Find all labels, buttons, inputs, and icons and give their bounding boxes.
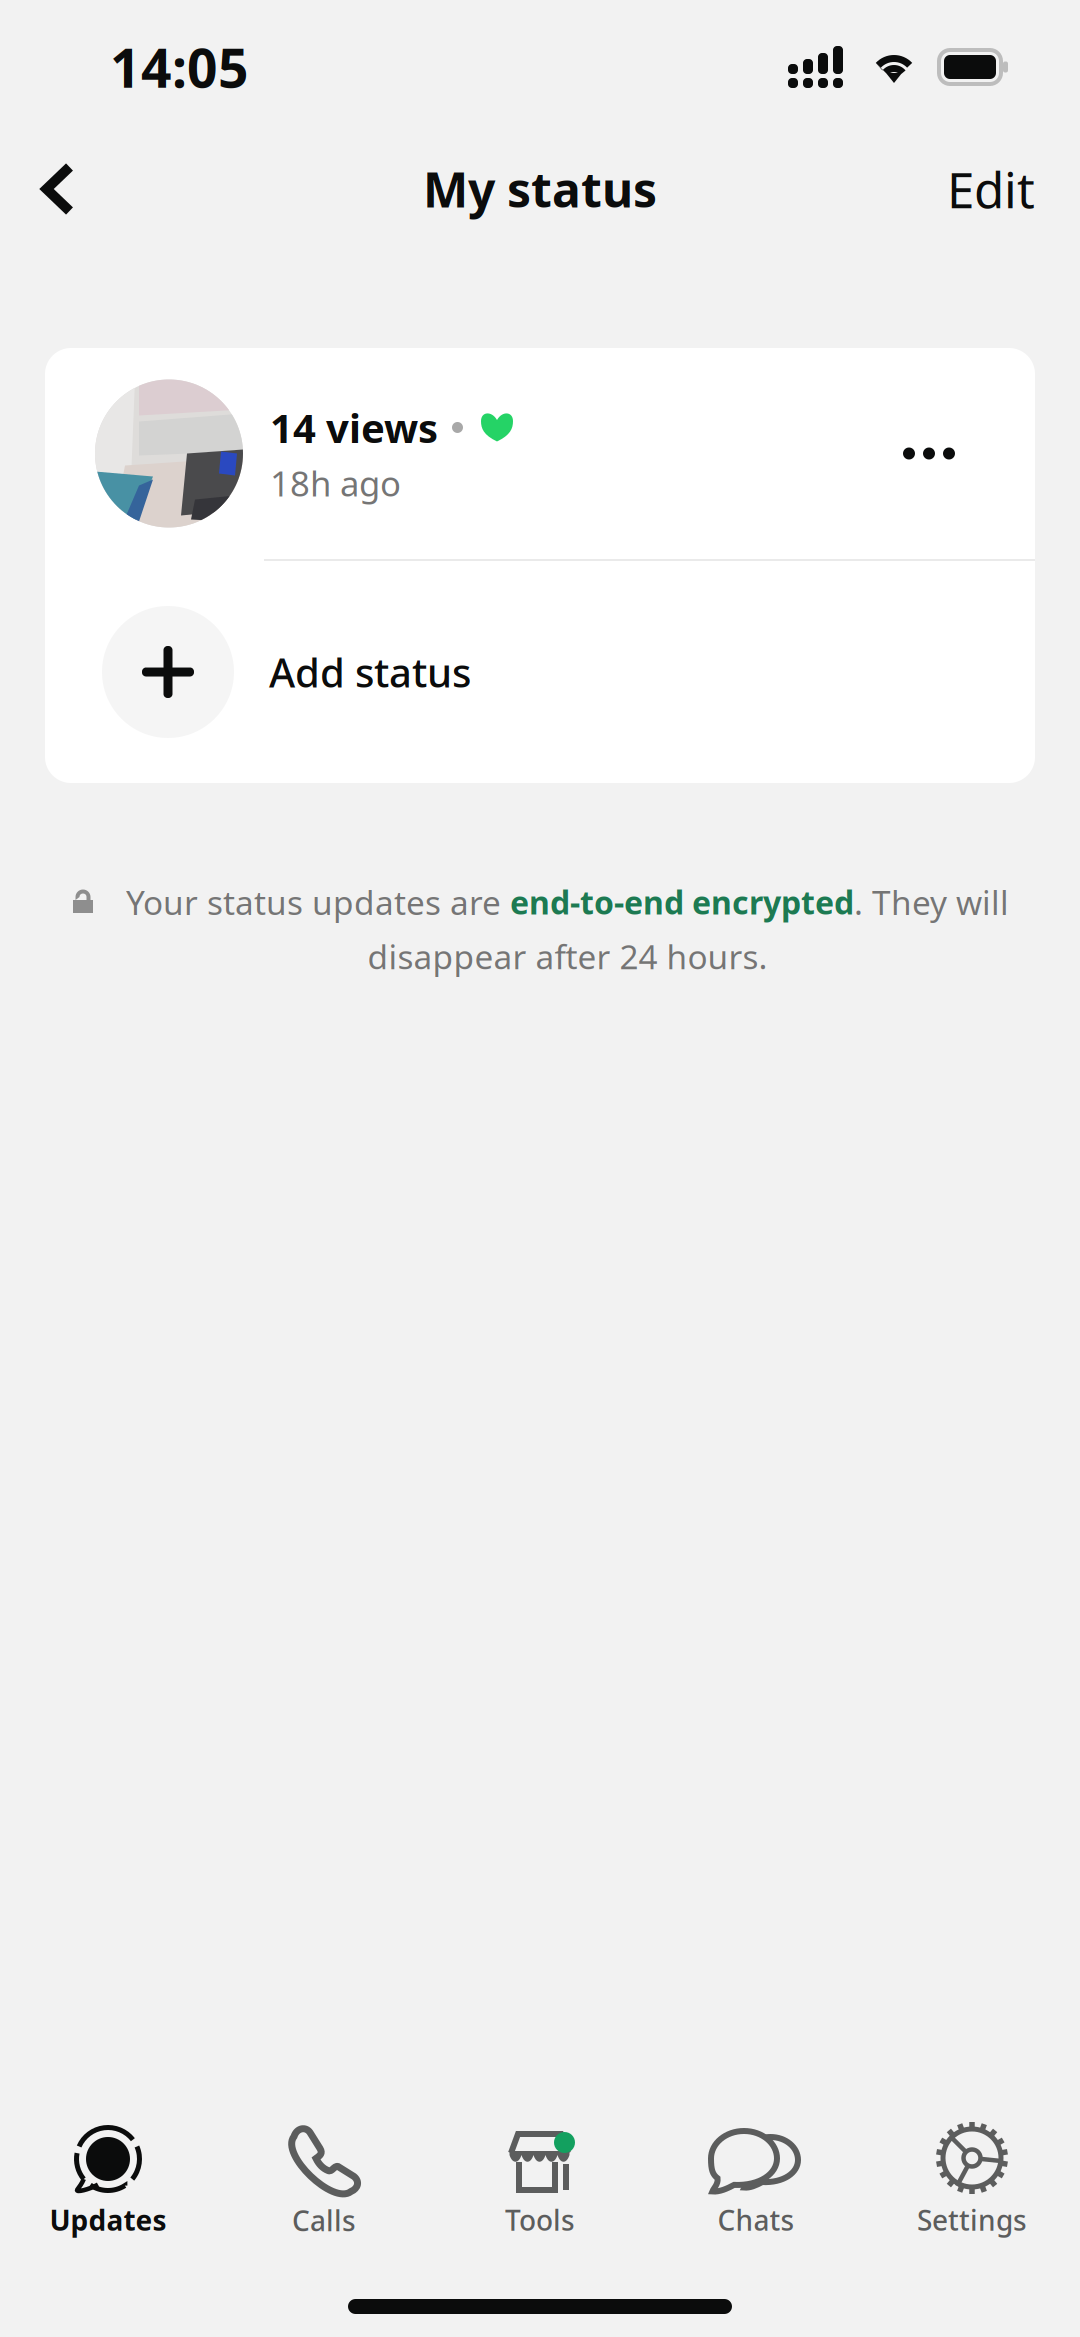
button[interactable]: Settings (864, 2119, 1080, 2236)
staticText: Edit (947, 156, 1035, 222)
button[interactable]: 14 views (45, 348, 1035, 559)
staticText: . They will (854, 880, 1009, 924)
staticText: Settings (917, 2201, 1027, 2239)
staticText: disappear after 24 hours. (367, 934, 767, 979)
staticText: Add status (269, 645, 471, 698)
button[interactable]: Edit (925, 141, 1057, 237)
button[interactable]: Back (10, 141, 106, 237)
staticText: 18h ago (270, 460, 401, 506)
staticText: Tools (505, 2201, 575, 2239)
button[interactable]: Calls (216, 2119, 432, 2236)
button[interactable]: Updates (0, 2119, 216, 2236)
staticText: end-to-end encrypted (510, 881, 854, 923)
staticText: 14 views (270, 401, 438, 454)
staticText: Calls (292, 2202, 356, 2239)
button[interactable]: Chats (648, 2119, 864, 2236)
button[interactable]: Add status (45, 561, 1035, 783)
staticText: Your status updates are (126, 880, 510, 924)
staticText: My status (423, 157, 657, 221)
button[interactable]: Tools (432, 2119, 648, 2236)
staticText: Updates (49, 2201, 166, 2239)
staticText: Chats (717, 2201, 794, 2239)
staticText: 14:05 (110, 32, 249, 102)
